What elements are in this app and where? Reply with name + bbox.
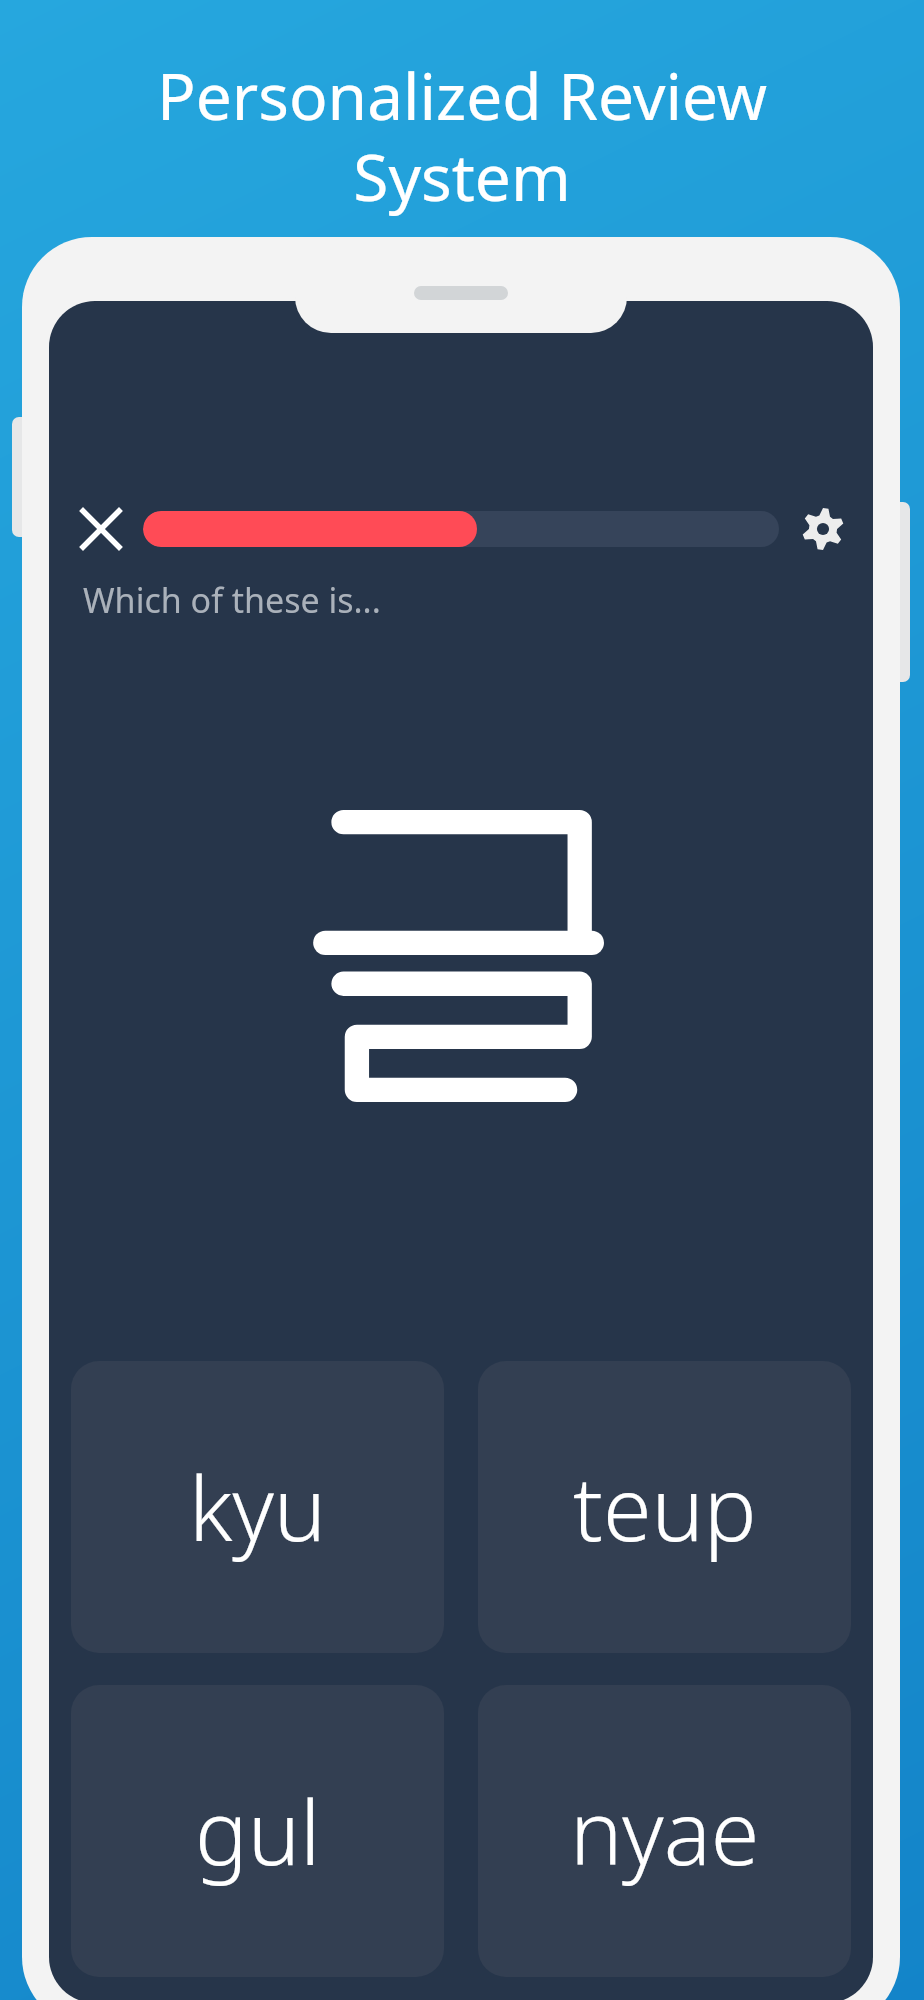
- button[interactable]: gul: [71, 1685, 444, 1977]
- staticText: Personalized Review System: [40, 52, 884, 220]
- staticText: nyae: [570, 1771, 760, 1891]
- button[interactable]: kyu: [71, 1361, 444, 1653]
- button[interactable]: Settings: [793, 499, 853, 559]
- button[interactable]: nyae: [478, 1685, 851, 1977]
- staticText: gul: [195, 1771, 321, 1891]
- staticText: teup: [573, 1447, 757, 1567]
- button[interactable]: Close: [69, 497, 133, 561]
- staticText: Which of these is...: [83, 577, 381, 623]
- staticText: kyu: [189, 1447, 327, 1567]
- button[interactable]: teup: [478, 1361, 851, 1653]
